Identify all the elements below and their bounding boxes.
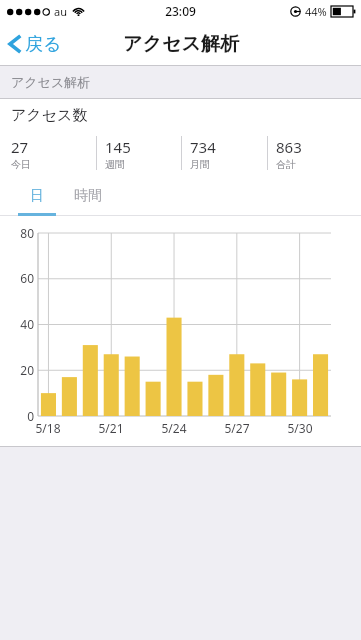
staticText: 戻る (25, 33, 62, 56)
staticText: アクセス数 (11, 106, 88, 125)
staticText: 20 (20, 362, 34, 378)
staticText: 44% (305, 4, 327, 19)
staticText: 23:09 (165, 3, 196, 19)
staticText: 日 (30, 187, 44, 205)
staticText: 145 (105, 137, 131, 157)
staticText: 5/24 (161, 420, 187, 436)
staticText: 734 (190, 137, 216, 157)
staticText: 時間 (74, 187, 102, 205)
staticText: 5/27 (224, 420, 250, 436)
staticText: 週間 (105, 158, 125, 171)
staticText: 月間 (190, 158, 210, 171)
button[interactable]: 日 (18, 176, 56, 216)
staticText: アクセス解析 (11, 74, 91, 90)
staticText: 5/30 (287, 420, 313, 436)
staticText: 40 (20, 316, 34, 332)
staticText: 863 (276, 137, 302, 157)
staticText: 27 (11, 137, 29, 157)
staticText: 合計 (276, 158, 296, 171)
staticText: 0 (27, 408, 34, 424)
staticText: au (54, 4, 67, 19)
staticText: 80 (20, 225, 34, 241)
staticText: アクセス解析 (123, 32, 239, 56)
staticText: 今日 (11, 158, 31, 171)
staticText: 60 (20, 270, 34, 286)
button[interactable]: 戻る (0, 26, 72, 62)
staticText: 5/21 (98, 420, 124, 436)
staticText: 5/18 (35, 420, 61, 436)
button[interactable]: 時間 (66, 176, 110, 216)
